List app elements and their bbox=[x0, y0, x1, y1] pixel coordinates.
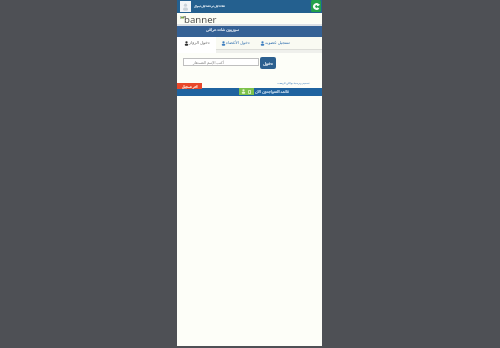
staticText: 0 bbox=[248, 88, 252, 95]
button[interactable]: دخول bbox=[260, 57, 276, 69]
button[interactable]: تسجيل عضوية bbox=[260, 37, 290, 49]
button[interactable]: اخر تسجيل bbox=[177, 83, 202, 89]
button[interactable]: تصميم وبرمجة بوكلي فريست bbox=[277, 81, 310, 85]
staticText: دخول الزوار bbox=[189, 40, 210, 46]
button[interactable]: 0 bbox=[239, 88, 289, 95]
staticText: شات ليل دردشة ليل تجوال bbox=[194, 4, 225, 8]
button[interactable]: دخول الأعضاء bbox=[221, 37, 250, 49]
staticText: اخر تسجيل bbox=[182, 84, 198, 89]
staticText: دخول الأعضاء bbox=[226, 40, 250, 46]
button[interactable]: دخول الزوار bbox=[184, 37, 210, 49]
button[interactable]: أكتب الإسم المستعار bbox=[183, 58, 259, 66]
staticText: banner bbox=[184, 13, 217, 23]
staticText: أكتب الإسم المستعار bbox=[193, 60, 224, 65]
button[interactable]: Refresh bbox=[311, 0, 321, 12]
staticText: قائمة المتواجدون الآن bbox=[255, 89, 289, 94]
staticText: دخول bbox=[263, 61, 273, 66]
staticText: تسجيل عضوية bbox=[265, 40, 290, 46]
staticText: سوريون شات عراقي bbox=[206, 27, 240, 32]
